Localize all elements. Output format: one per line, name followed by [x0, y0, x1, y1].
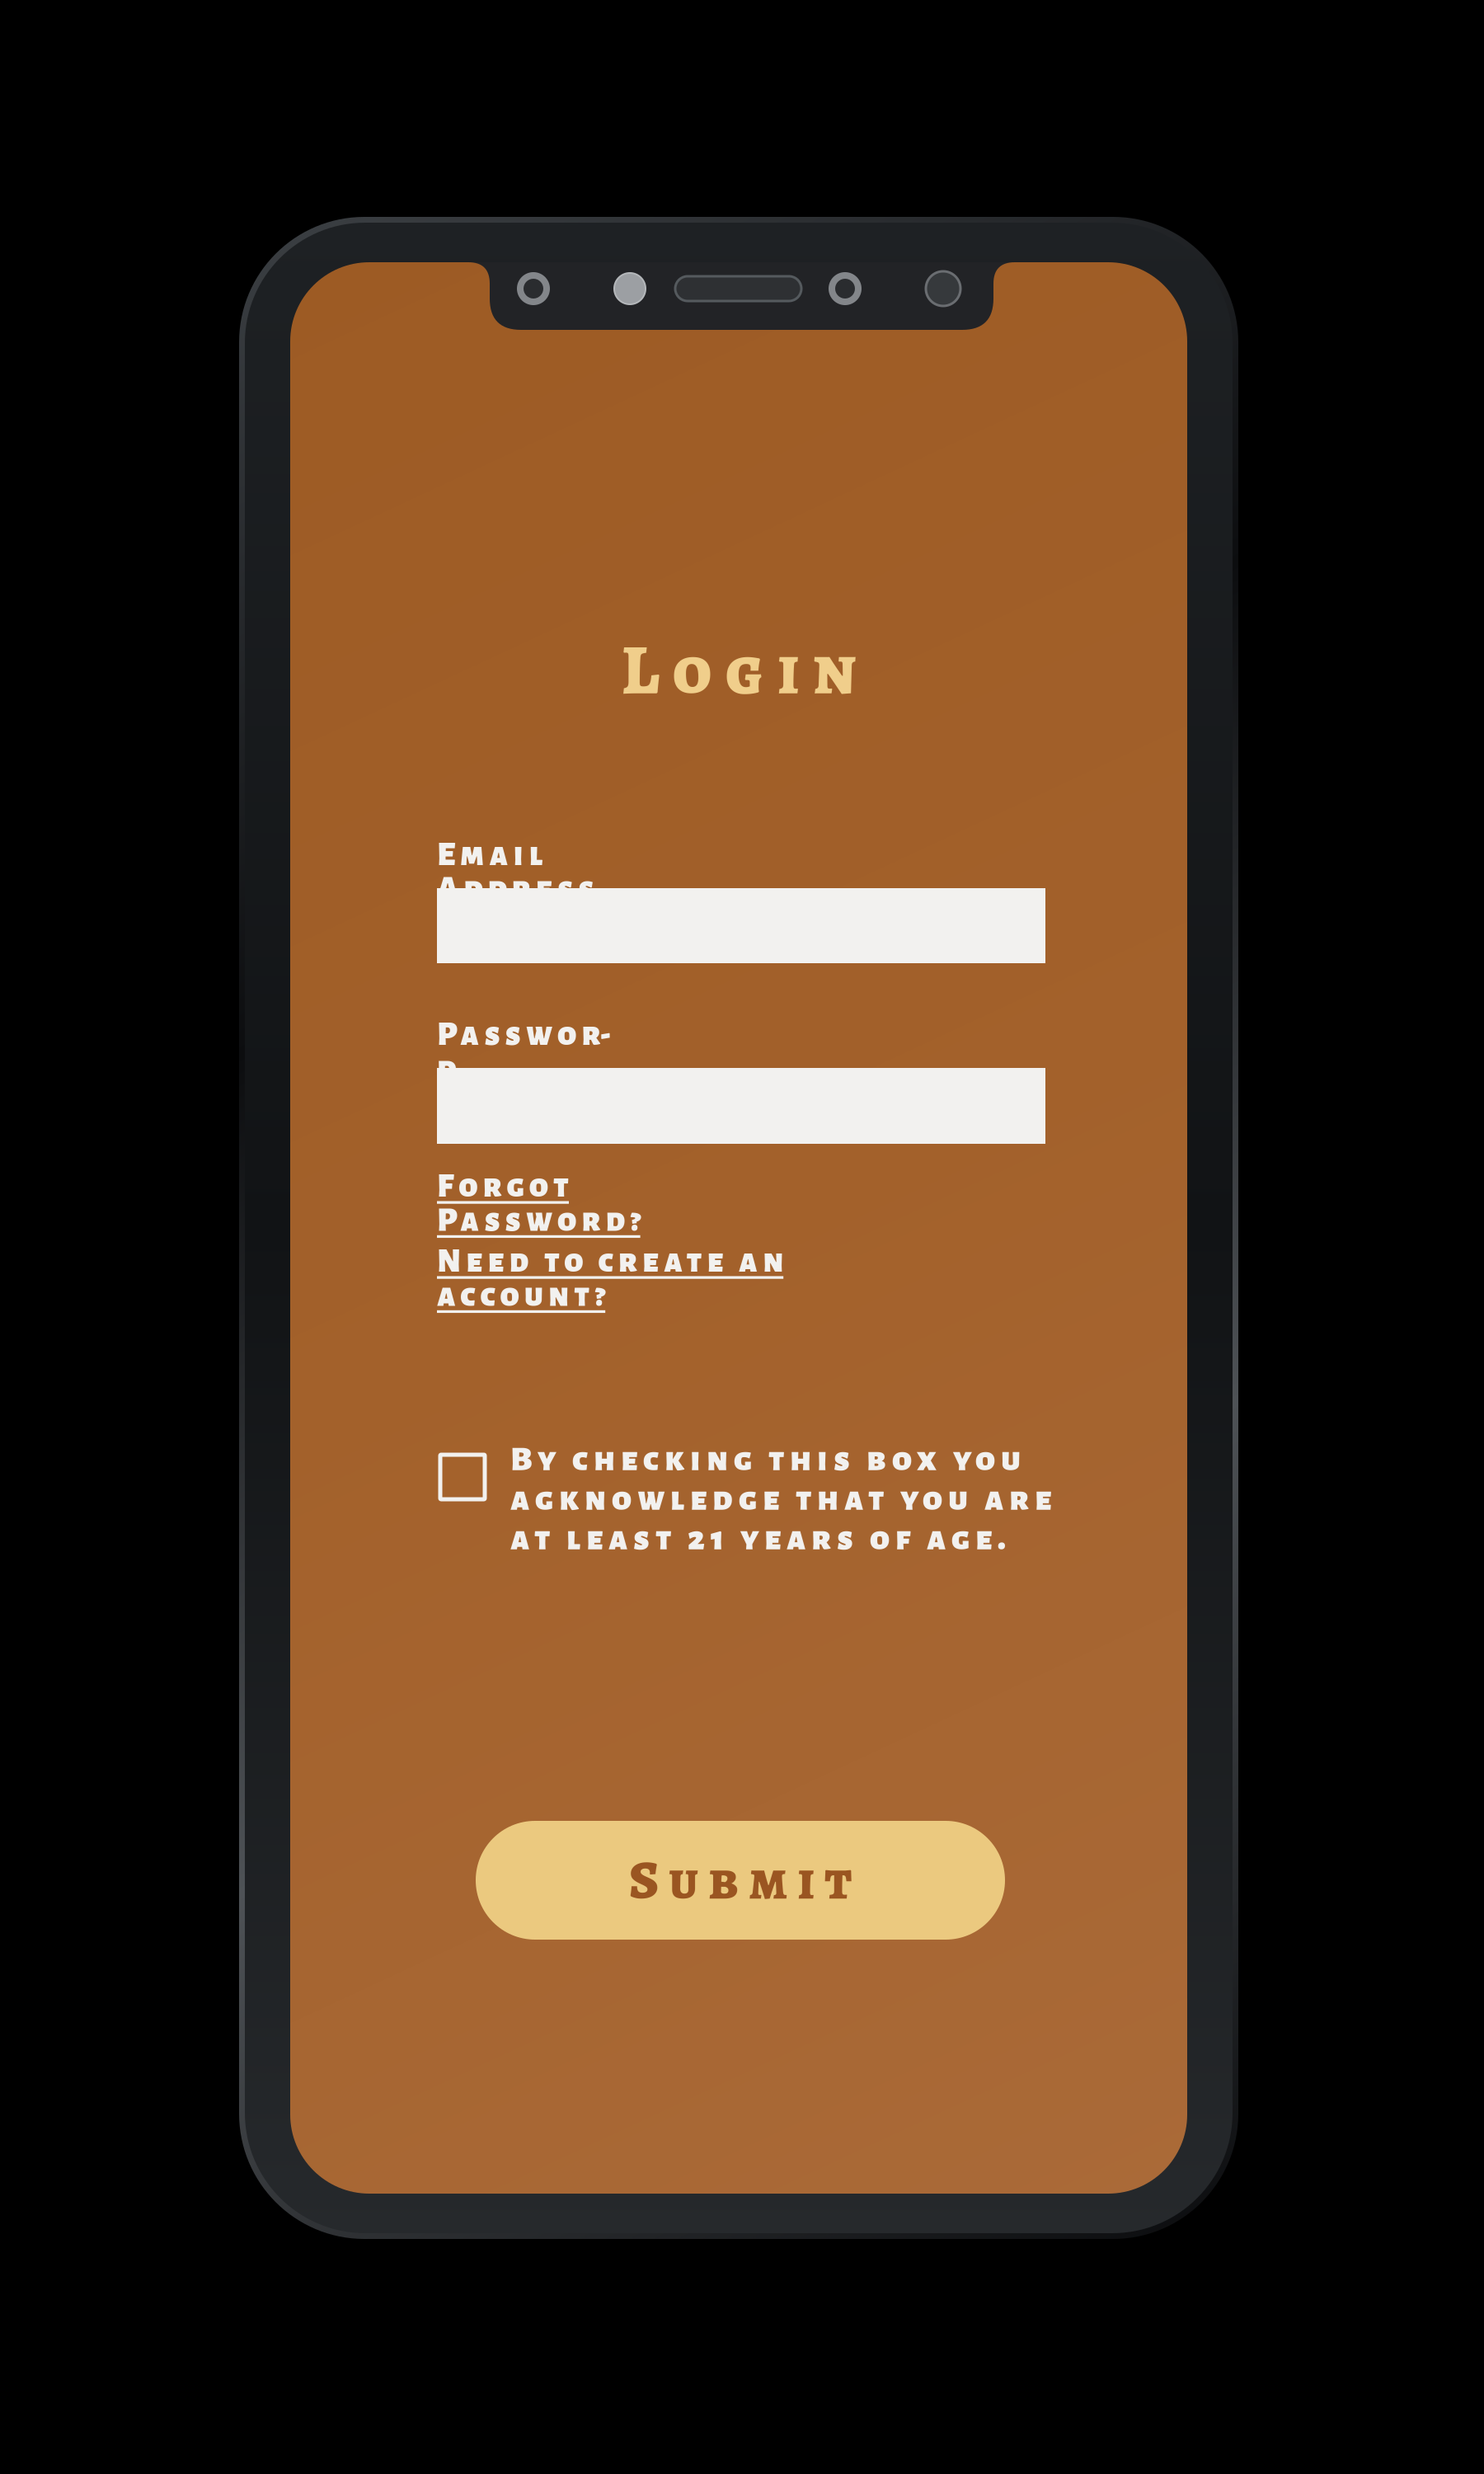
- staticText: Forgot Password?: [437, 1169, 787, 1203]
- staticText: Login: [621, 622, 856, 718]
- button[interactable]: Confirm you are at least 21 years of age: [440, 1440, 485, 1499]
- button[interactable]: Need to create an account?: [437, 1244, 966, 1278]
- staticText: Submit: [629, 1843, 852, 1918]
- button[interactable]: Submit: [476, 1821, 1005, 1940]
- staticText: By checking this box you: [510, 1442, 1021, 1477]
- staticText: Need to create an account?: [437, 1244, 966, 1278]
- staticText: agknowledge that you are: [510, 1482, 1051, 1517]
- staticText: Password: [437, 1018, 625, 1052]
- staticText: Email Address: [437, 838, 715, 872]
- staticText: at least 21 years of age.: [510, 1521, 1006, 1556]
- button[interactable]: Forgot Password?: [437, 1169, 787, 1203]
